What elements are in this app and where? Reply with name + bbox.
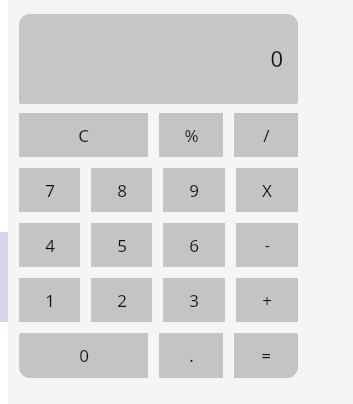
staticText: = xyxy=(261,344,271,367)
button[interactable]: + xyxy=(236,278,298,322)
staticText: 0 xyxy=(270,43,283,73)
staticText: X xyxy=(262,179,272,202)
staticText: + xyxy=(262,289,272,312)
button[interactable]: 6 xyxy=(163,223,225,267)
button[interactable]: % xyxy=(159,113,223,157)
staticText: C xyxy=(78,124,89,147)
staticText: 8 xyxy=(117,179,127,202)
button[interactable]: = xyxy=(234,333,298,378)
staticText: 2 xyxy=(117,289,127,312)
button[interactable]: 4 xyxy=(19,223,80,267)
button[interactable]: 9 xyxy=(163,168,225,212)
staticText: 9 xyxy=(189,179,199,202)
staticText: 6 xyxy=(189,234,199,257)
button[interactable]: 7 xyxy=(19,168,80,212)
staticText: 4 xyxy=(45,234,55,257)
button[interactable]: 5 xyxy=(91,223,152,267)
button[interactable]: 3 xyxy=(163,278,225,322)
button[interactable]: / xyxy=(234,113,298,157)
staticText: 3 xyxy=(189,289,199,312)
button[interactable]: 0 xyxy=(19,333,148,378)
staticText: 5 xyxy=(117,234,127,257)
button[interactable]: 2 xyxy=(91,278,152,322)
staticText: . xyxy=(189,344,194,367)
button[interactable]: X xyxy=(236,168,298,212)
button[interactable]: 8 xyxy=(91,168,152,212)
staticText: 7 xyxy=(45,179,55,202)
button[interactable]: - xyxy=(236,223,298,267)
staticText: % xyxy=(184,124,199,147)
button[interactable]: 0 xyxy=(19,14,298,104)
staticText: / xyxy=(263,124,270,147)
button[interactable]: . xyxy=(159,333,223,378)
button[interactable]: C xyxy=(19,113,148,157)
staticText: 0 xyxy=(79,344,89,367)
staticText: 1 xyxy=(45,289,55,312)
button[interactable]: 1 xyxy=(19,278,80,322)
staticText: - xyxy=(265,235,270,255)
